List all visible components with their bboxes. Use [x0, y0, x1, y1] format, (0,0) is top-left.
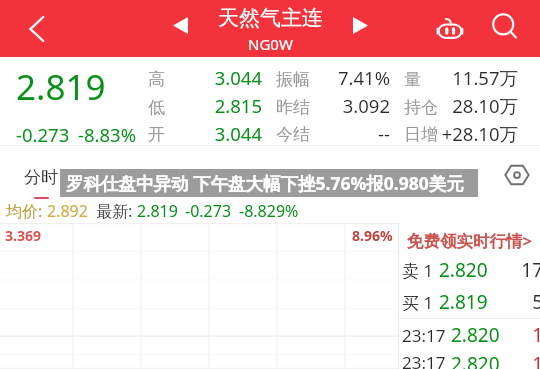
staticText: 天然气主连	[218, 5, 323, 31]
staticText: 高	[148, 69, 165, 90]
staticText: 17	[491, 257, 540, 283]
staticText: 3.092	[310, 93, 390, 118]
button[interactable]: Next contract	[344, 9, 376, 41]
staticText: 最新:	[96, 200, 133, 222]
staticText: 开	[148, 124, 165, 145]
staticText: 7.41%	[310, 65, 390, 90]
button[interactable]: 日K	[81, 167, 162, 190]
button[interactable]: 买 1	[402, 286, 540, 318]
staticText: 1	[503, 322, 540, 348]
button[interactable]: 月K	[244, 167, 326, 190]
staticText: 23:17	[402, 324, 446, 347]
staticText: 罗科仕盘中异动 下午盘大幅下挫5.76%报0.980美元	[66, 171, 464, 195]
button[interactable]: Search	[485, 7, 525, 47]
staticText: +28.10万	[438, 121, 518, 145]
staticText: 月K	[271, 167, 299, 190]
staticText: 2.892	[47, 200, 88, 222]
staticText: -0.273	[16, 122, 70, 145]
button[interactable]: 分时	[0, 167, 81, 199]
staticText: 2.819	[16, 63, 106, 111]
staticText: 3.369	[5, 226, 41, 245]
button[interactable]: 更多	[408, 167, 490, 188]
staticText: 3.044	[165, 121, 262, 145]
staticText: -8.83%	[78, 122, 137, 145]
button[interactable]: 免费领实时行情>	[399, 223, 540, 254]
staticText: 均价:	[6, 200, 43, 222]
staticText: 低	[148, 97, 165, 118]
staticText: 3.044	[165, 65, 262, 90]
staticText: 免费领实时行情>	[407, 229, 532, 252]
button[interactable]: Chart settings	[500, 158, 534, 192]
staticText: 2.820	[439, 257, 488, 283]
staticText: 2.819	[137, 200, 178, 222]
staticText: 卖 1	[402, 259, 434, 282]
button[interactable]: 周K	[162, 167, 244, 190]
staticText: 1	[503, 351, 540, 369]
staticText: -8.829%	[239, 200, 299, 222]
staticText: 振幅	[276, 69, 310, 90]
button[interactable]: 卖 1	[402, 254, 540, 286]
button[interactable]: 罗科仕盘中异动 下午盘大幅下挫5.76%报0.980美元	[60, 169, 478, 197]
staticText: -0.273	[185, 200, 232, 222]
staticText: 2.815	[165, 93, 262, 118]
staticText: 周K	[189, 167, 217, 190]
staticText: 28.10万	[438, 93, 518, 118]
button[interactable]: Previous contract	[164, 9, 196, 41]
staticText: 今结	[276, 124, 310, 145]
button[interactable]: 23:17	[402, 351, 540, 369]
staticText: 5	[491, 289, 540, 315]
staticText: 2.820	[451, 322, 500, 348]
staticText: 日增	[404, 124, 438, 145]
staticText: 11.57万	[421, 65, 518, 90]
staticText: --	[310, 121, 390, 145]
staticText: 8.96%	[352, 226, 393, 245]
staticText: 昨结	[276, 97, 310, 118]
staticText: 五日	[350, 167, 384, 188]
staticText: NG0W	[248, 34, 293, 54]
button[interactable]: Back	[16, 9, 56, 49]
button[interactable]: 23:17	[402, 319, 540, 351]
button[interactable]: AI assistant	[430, 7, 470, 47]
staticText: 2.820	[451, 351, 500, 369]
button[interactable]: 五日	[326, 167, 408, 188]
staticText: 更多	[426, 167, 460, 188]
staticText: 23:17	[402, 351, 446, 369]
staticText: 持仓	[404, 97, 438, 118]
staticText: 日K	[108, 167, 136, 190]
staticText: 2.819	[439, 289, 488, 315]
staticText: 量	[404, 69, 421, 90]
staticText: 分时	[24, 167, 58, 188]
staticText: 买 1	[402, 291, 434, 314]
